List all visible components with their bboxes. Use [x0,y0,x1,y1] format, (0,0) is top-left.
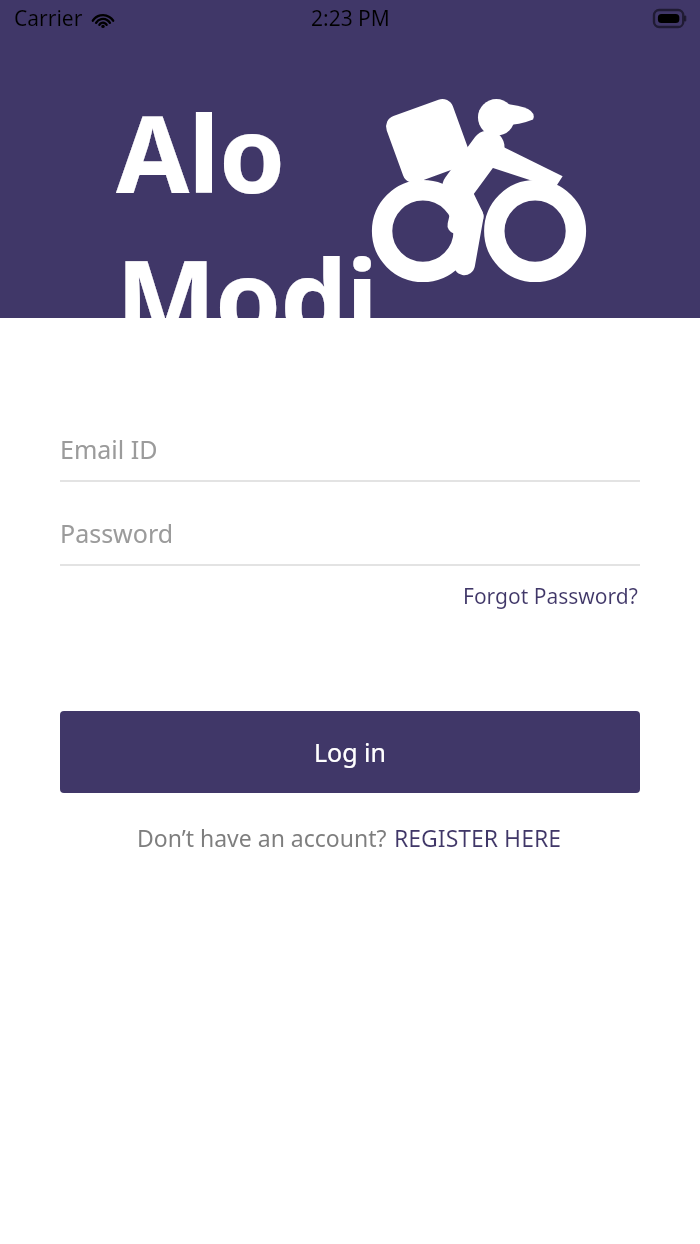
staticText: Forgot Password? [463,582,638,611]
staticText: REGISTER HERE [394,822,562,853]
staticText: Carrier [14,4,83,33]
staticText: Log in [314,735,387,769]
other: Battery full [654,10,688,27]
button[interactable]: Password [60,514,640,566]
other: Wi-Fi signal [91,10,115,28]
button[interactable]: REGISTER HERE [393,819,563,856]
button[interactable]: Email ID [60,430,640,482]
staticText: Password [60,516,174,550]
button[interactable]: Log in [60,711,640,793]
staticText: 2:23 PM [311,4,390,33]
staticText: Don’t have an account? [137,822,393,853]
staticText: Alo [116,80,285,224]
staticText: Modi [116,224,377,368]
button[interactable]: Forgot Password? [461,578,640,615]
staticText: Email ID [60,432,158,466]
